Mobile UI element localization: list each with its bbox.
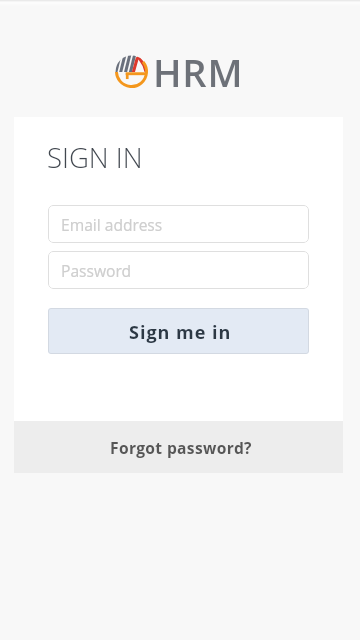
staticText: Email address xyxy=(61,214,163,235)
staticText: Password xyxy=(61,260,132,281)
button[interactable]: Forgot password? xyxy=(14,421,343,473)
button[interactable]: Email address xyxy=(48,205,309,243)
other: HRM logo xyxy=(113,50,247,92)
button[interactable]: Sign me in xyxy=(48,308,309,354)
staticText: SIGN IN xyxy=(47,139,143,176)
button[interactable]: Password xyxy=(48,251,309,289)
staticText: Sign me in xyxy=(129,320,232,345)
staticText: Forgot password? xyxy=(110,437,252,458)
staticText: HRM xyxy=(153,46,244,88)
